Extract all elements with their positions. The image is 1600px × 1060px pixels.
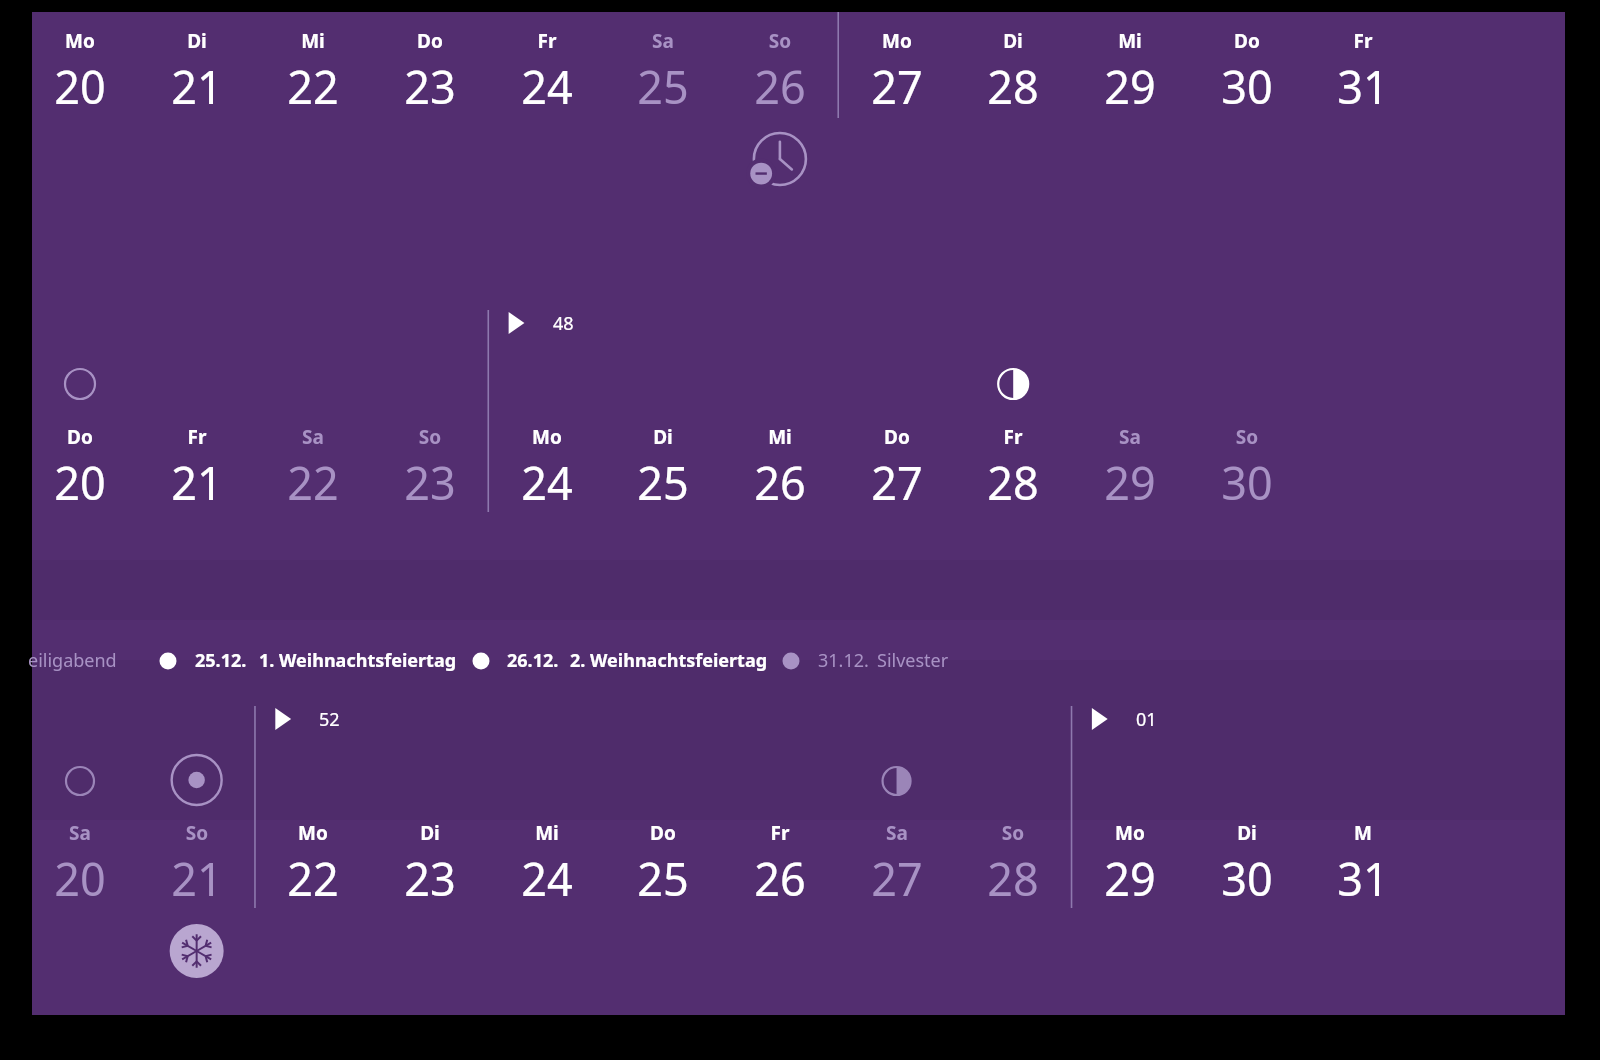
button[interactable]: Di 21: [138, 18, 255, 138]
button[interactable]: Daylight saving time change: [748, 127, 812, 191]
button[interactable]: Fr 26: [722, 810, 839, 930]
staticText: Mo: [1050, 820, 1210, 848]
staticText: Di: [350, 820, 510, 848]
button[interactable]: [150, 642, 440, 678]
button[interactable]: So 23: [372, 414, 489, 534]
staticText: Sa: [233, 424, 393, 452]
staticText: 31.12.: [818, 648, 898, 675]
staticText: 24: [467, 56, 627, 121]
button[interactable]: Mi 26: [722, 414, 839, 534]
button[interactable]: Mo 29: [1072, 810, 1189, 930]
button[interactable]: Winter solstice: [165, 919, 229, 983]
staticText: 21: [117, 56, 277, 121]
staticText: Sa: [1050, 424, 1210, 452]
button[interactable]: Week 01: [1086, 701, 1196, 737]
staticText: Di: [933, 28, 1093, 56]
button[interactable]: Do 27: [838, 414, 955, 534]
staticText: 23: [350, 452, 510, 517]
button[interactable]: Mo 20: [22, 18, 139, 138]
staticText: 27: [817, 848, 977, 913]
button[interactable]: Mo 27: [838, 18, 955, 138]
button[interactable]: [773, 642, 973, 678]
staticText: Sa: [583, 28, 743, 56]
staticText: 26: [700, 56, 860, 121]
staticText: eiligabend: [28, 648, 168, 675]
button[interactable]: Last quarter moon: [873, 757, 921, 805]
staticText: 25: [583, 452, 743, 517]
staticText: Mo: [467, 424, 627, 452]
staticText: Do: [817, 424, 977, 452]
staticText: 22: [233, 56, 393, 121]
button[interactable]: Di 28: [955, 18, 1072, 138]
button[interactable]: [463, 642, 753, 678]
staticText: 20: [0, 848, 160, 913]
staticText: 24: [467, 452, 627, 517]
button[interactable]: New moon: [56, 360, 104, 408]
staticText: So: [117, 820, 277, 848]
staticText: Fr: [933, 424, 1093, 452]
button[interactable]: Full moon: [165, 748, 229, 812]
button[interactable]: Di 30: [1188, 810, 1305, 930]
staticText: Do: [1167, 28, 1327, 56]
staticText: 31: [1283, 848, 1443, 913]
staticText: Fr: [467, 28, 627, 56]
button[interactable]: Fr 28: [955, 414, 1072, 534]
button[interactable]: So 28: [955, 810, 1072, 930]
button[interactable]: Mi 24: [488, 810, 605, 930]
button[interactable]: Sa 25: [605, 18, 722, 138]
button[interactable]: Week 52: [269, 701, 379, 737]
staticText: 20: [0, 452, 160, 517]
button[interactable]: Di 23: [372, 810, 489, 930]
button[interactable]: Sa 22: [255, 414, 372, 534]
button[interactable]: Do 30: [1188, 18, 1305, 138]
button[interactable]: Do 25: [605, 810, 722, 930]
button[interactable]: M 31: [1305, 810, 1422, 930]
button[interactable]: Fr 31: [1305, 18, 1422, 138]
button[interactable]: Sa 29: [1072, 414, 1189, 534]
staticText: 22: [233, 848, 393, 913]
staticText: 28: [933, 452, 1093, 517]
staticText: So: [350, 424, 510, 452]
staticText: Di: [1167, 820, 1327, 848]
staticText: M: [1283, 820, 1443, 848]
staticText: 30: [1167, 56, 1327, 121]
button[interactable]: New moon: [56, 757, 104, 805]
button[interactable]: Fr 21: [138, 414, 255, 534]
staticText: 24: [467, 848, 627, 913]
staticText: 28: [933, 848, 1093, 913]
button[interactable]: Week 48: [503, 305, 613, 341]
button[interactable]: Mi 22: [255, 18, 372, 138]
staticText: 48: [553, 311, 613, 338]
button[interactable]: Mo 22: [255, 810, 372, 930]
button[interactable]: Do 23: [372, 18, 489, 138]
staticText: Do: [350, 28, 510, 56]
staticText: 2. Weihnachtsfeiertag: [570, 648, 800, 675]
staticText: 26.12.: [507, 648, 587, 675]
button[interactable]: Sa 27: [838, 810, 955, 930]
staticText: 29: [1050, 848, 1210, 913]
button[interactable]: Do 20: [22, 414, 139, 534]
button[interactable]: Mi 29: [1072, 18, 1189, 138]
staticText: Sa: [0, 820, 160, 848]
button[interactable]: Mo 24: [488, 414, 605, 534]
button[interactable]: First quarter moon: [989, 360, 1037, 408]
staticText: 25: [583, 848, 743, 913]
staticText: 01: [1136, 707, 1196, 734]
button[interactable]: Fr 24: [488, 18, 605, 138]
staticText: So: [933, 820, 1093, 848]
staticText: 1. Weihnachtsfeiertag: [259, 648, 489, 675]
button[interactable]: Sa 20: [22, 810, 139, 930]
button[interactable]: So 26: [722, 18, 839, 138]
staticText: Di: [117, 28, 277, 56]
staticText: Mi: [233, 28, 393, 56]
staticText: 52: [319, 707, 379, 734]
staticText: Mi: [467, 820, 627, 848]
button[interactable]: So 30: [1188, 414, 1305, 534]
button[interactable]: Di 25: [605, 414, 722, 534]
staticText: 30: [1167, 452, 1327, 517]
staticText: 28: [933, 56, 1093, 121]
button[interactable]: [32, 12, 1565, 1015]
staticText: Do: [0, 424, 160, 452]
button[interactable]: So 21: [138, 810, 255, 930]
staticText: 27: [817, 56, 977, 121]
